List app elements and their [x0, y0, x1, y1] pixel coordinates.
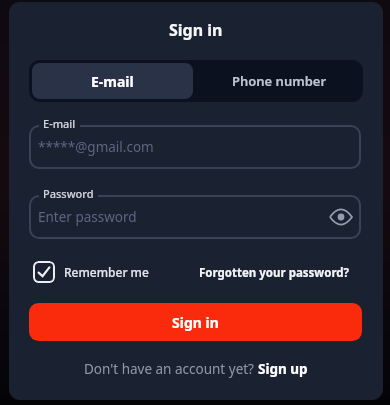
staticText: Don't have an account yet? — [84, 360, 258, 378]
staticText: Password — [43, 186, 94, 201]
staticText: Enter password — [38, 208, 137, 226]
staticText: Sign in — [172, 313, 219, 332]
button[interactable]: Phone number — [196, 60, 363, 102]
button[interactable]: E-mail — [32, 63, 193, 99]
button[interactable]: Remember me — [33, 261, 149, 283]
button[interactable]: *****@gmail.com — [29, 125, 361, 169]
staticText: Remember me — [64, 264, 149, 280]
button[interactable]: Enter password — [29, 195, 361, 239]
staticText: Sign up — [258, 360, 308, 378]
button[interactable]: Don't have an account yet? — [84, 360, 308, 378]
staticText: E-mail — [43, 116, 76, 131]
staticText: Forgotten your password? — [199, 265, 350, 281]
staticText: E-mail — [91, 72, 134, 91]
staticText: Phone number — [232, 72, 327, 90]
staticText: Sign in — [169, 19, 223, 41]
staticText: *****@gmail.com — [38, 138, 154, 156]
button[interactable]: Forgotten your password? — [199, 265, 350, 281]
button[interactable]: Sign in — [29, 303, 362, 341]
